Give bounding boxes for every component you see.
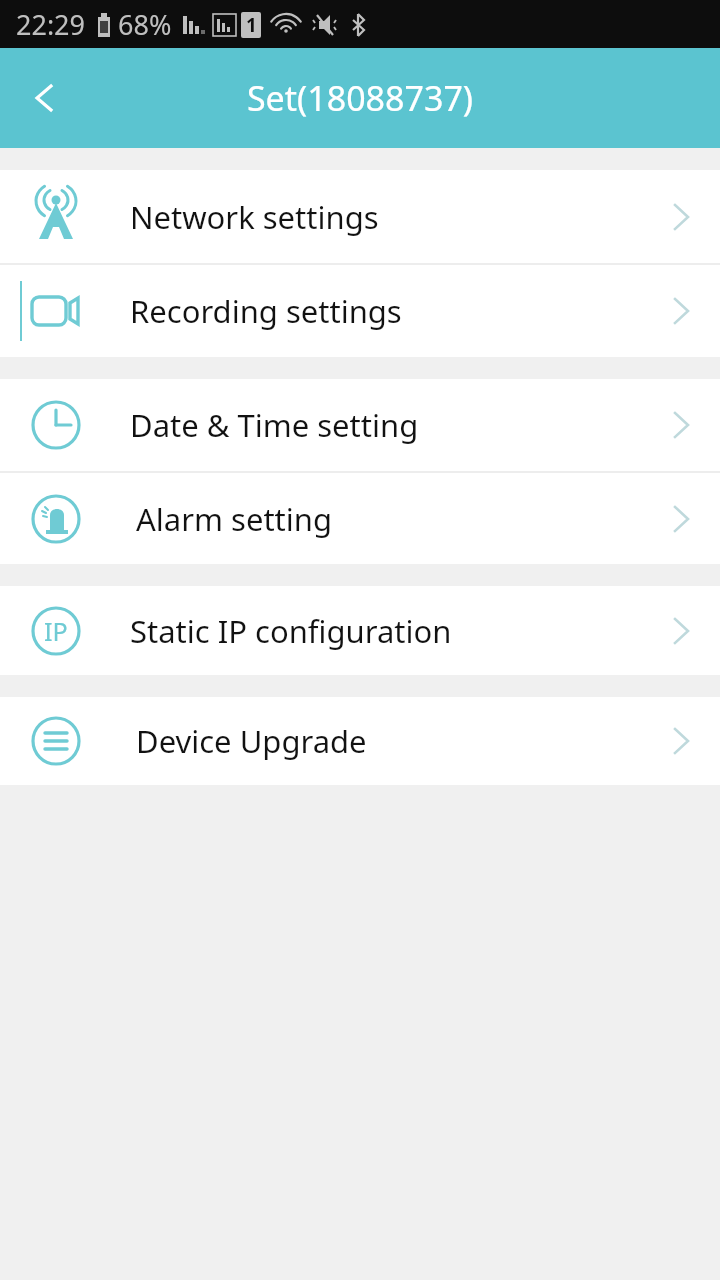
staticText: Recording settings: [130, 290, 402, 332]
button[interactable]: IP: [0, 586, 720, 675]
staticText: Device Upgrade: [136, 720, 367, 762]
staticText: Set(18088737): [0, 75, 720, 121]
staticText: Alarm setting: [136, 498, 332, 540]
staticText: Date & Time setting: [130, 404, 419, 446]
staticText: 68%: [118, 6, 172, 43]
staticText: Static IP configuration: [130, 610, 452, 652]
button[interactable]: Network settings: [0, 170, 720, 263]
button[interactable]: Recording settings: [0, 265, 720, 357]
button[interactable]: Device Upgrade: [0, 697, 720, 785]
staticText: 22:29: [16, 6, 86, 43]
staticText: IP: [44, 614, 68, 648]
staticText: Network settings: [130, 196, 379, 238]
button[interactable]: Date & Time setting: [0, 379, 720, 471]
button[interactable]: Alarm setting: [0, 473, 720, 564]
staticText: 1: [246, 12, 257, 38]
button[interactable]: Back: [0, 48, 92, 148]
